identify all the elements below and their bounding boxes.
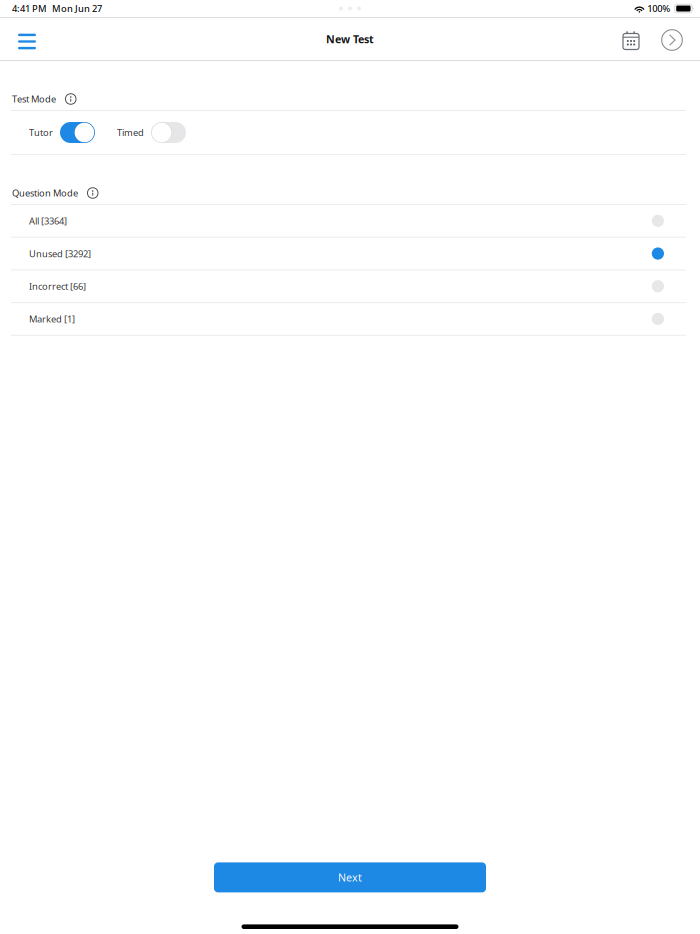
staticText: 100% [647,2,670,15]
staticText: Next [338,870,362,884]
button[interactable]: Next [214,862,486,892]
button[interactable]: About Test Mode [65,94,76,104]
button[interactable]: Continue [652,18,692,60]
button[interactable]: Incorrect [66] [0,270,700,303]
staticText: Tutor [29,126,53,139]
button[interactable]: Tutor [29,111,95,154]
staticText: Marked [1] [29,313,75,325]
staticText: 4:41 PM [12,2,47,15]
staticText: Unused [3292] [29,247,91,260]
staticText: Incorrect [66] [29,280,86,292]
staticText: New Test [326,32,374,46]
button[interactable]: Calendar [611,18,651,60]
button[interactable]: Timed [117,111,186,154]
button[interactable]: Marked [1] [0,303,700,336]
staticText: Mon Jun 27 [52,2,102,15]
staticText: Test Mode [12,93,56,105]
button[interactable]: About Question Mode [87,188,98,198]
button[interactable]: All [3364] [0,205,700,238]
button[interactable]: Unused [3292] [0,238,700,270]
button[interactable]: Menu [5,18,49,60]
staticText: Question Mode [12,187,78,199]
staticText: All [3364] [29,215,67,227]
staticText: Timed [117,126,144,139]
